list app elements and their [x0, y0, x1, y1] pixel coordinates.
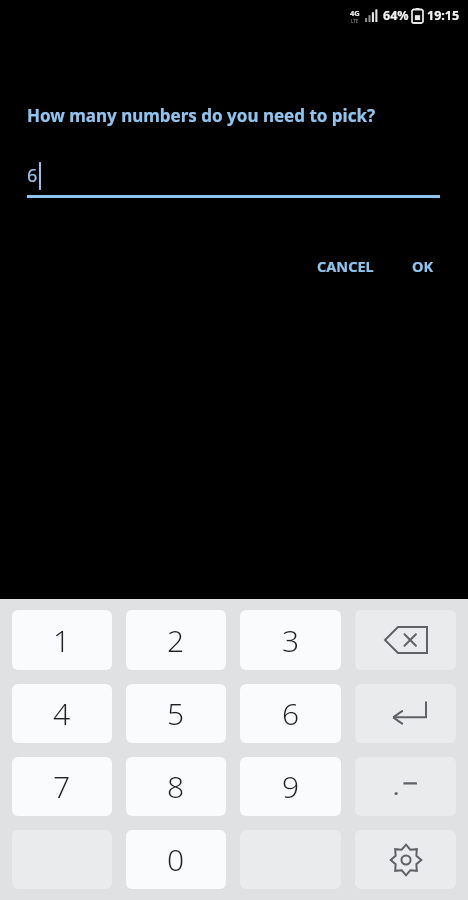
button[interactable]: 5	[126, 684, 226, 743]
staticText: 3	[282, 620, 300, 661]
staticText: 9	[282, 766, 300, 807]
staticText: 4	[53, 693, 71, 734]
button[interactable]: Keyboard settings	[355, 830, 456, 889]
staticText: 19:15	[427, 7, 460, 24]
staticText: 1	[53, 620, 71, 661]
staticText: 4G	[350, 8, 360, 18]
button[interactable]: 4	[12, 684, 112, 743]
staticText: How many numbers do you need to pick?	[27, 104, 376, 127]
button[interactable]: 9	[240, 757, 341, 816]
button[interactable]: Dot and dash	[355, 757, 456, 816]
button[interactable]: OK	[402, 250, 444, 282]
button[interactable]: 7	[12, 757, 112, 816]
staticText: CANCEL	[317, 256, 374, 276]
staticText: LTE	[351, 18, 359, 24]
button[interactable]: 2	[126, 610, 226, 670]
staticText: 7	[53, 766, 71, 807]
button[interactable]: 6	[240, 684, 341, 743]
button[interactable]: 3	[240, 610, 341, 670]
staticText: OK	[412, 256, 434, 276]
staticText: 6	[27, 163, 38, 188]
button[interactable]: 1	[12, 610, 112, 670]
staticText: 0	[167, 839, 185, 880]
button[interactable]: 0	[126, 830, 226, 889]
staticText: 5	[167, 693, 185, 734]
staticText: 64%	[383, 7, 409, 24]
button[interactable]: Backspace	[355, 610, 456, 670]
button[interactable]: CANCEL	[307, 250, 384, 282]
button[interactable]: Enter	[355, 684, 456, 743]
staticText: 2	[167, 620, 185, 661]
staticText: 8	[167, 766, 185, 807]
staticText: 6	[282, 693, 300, 734]
button[interactable]: 8	[126, 757, 226, 816]
